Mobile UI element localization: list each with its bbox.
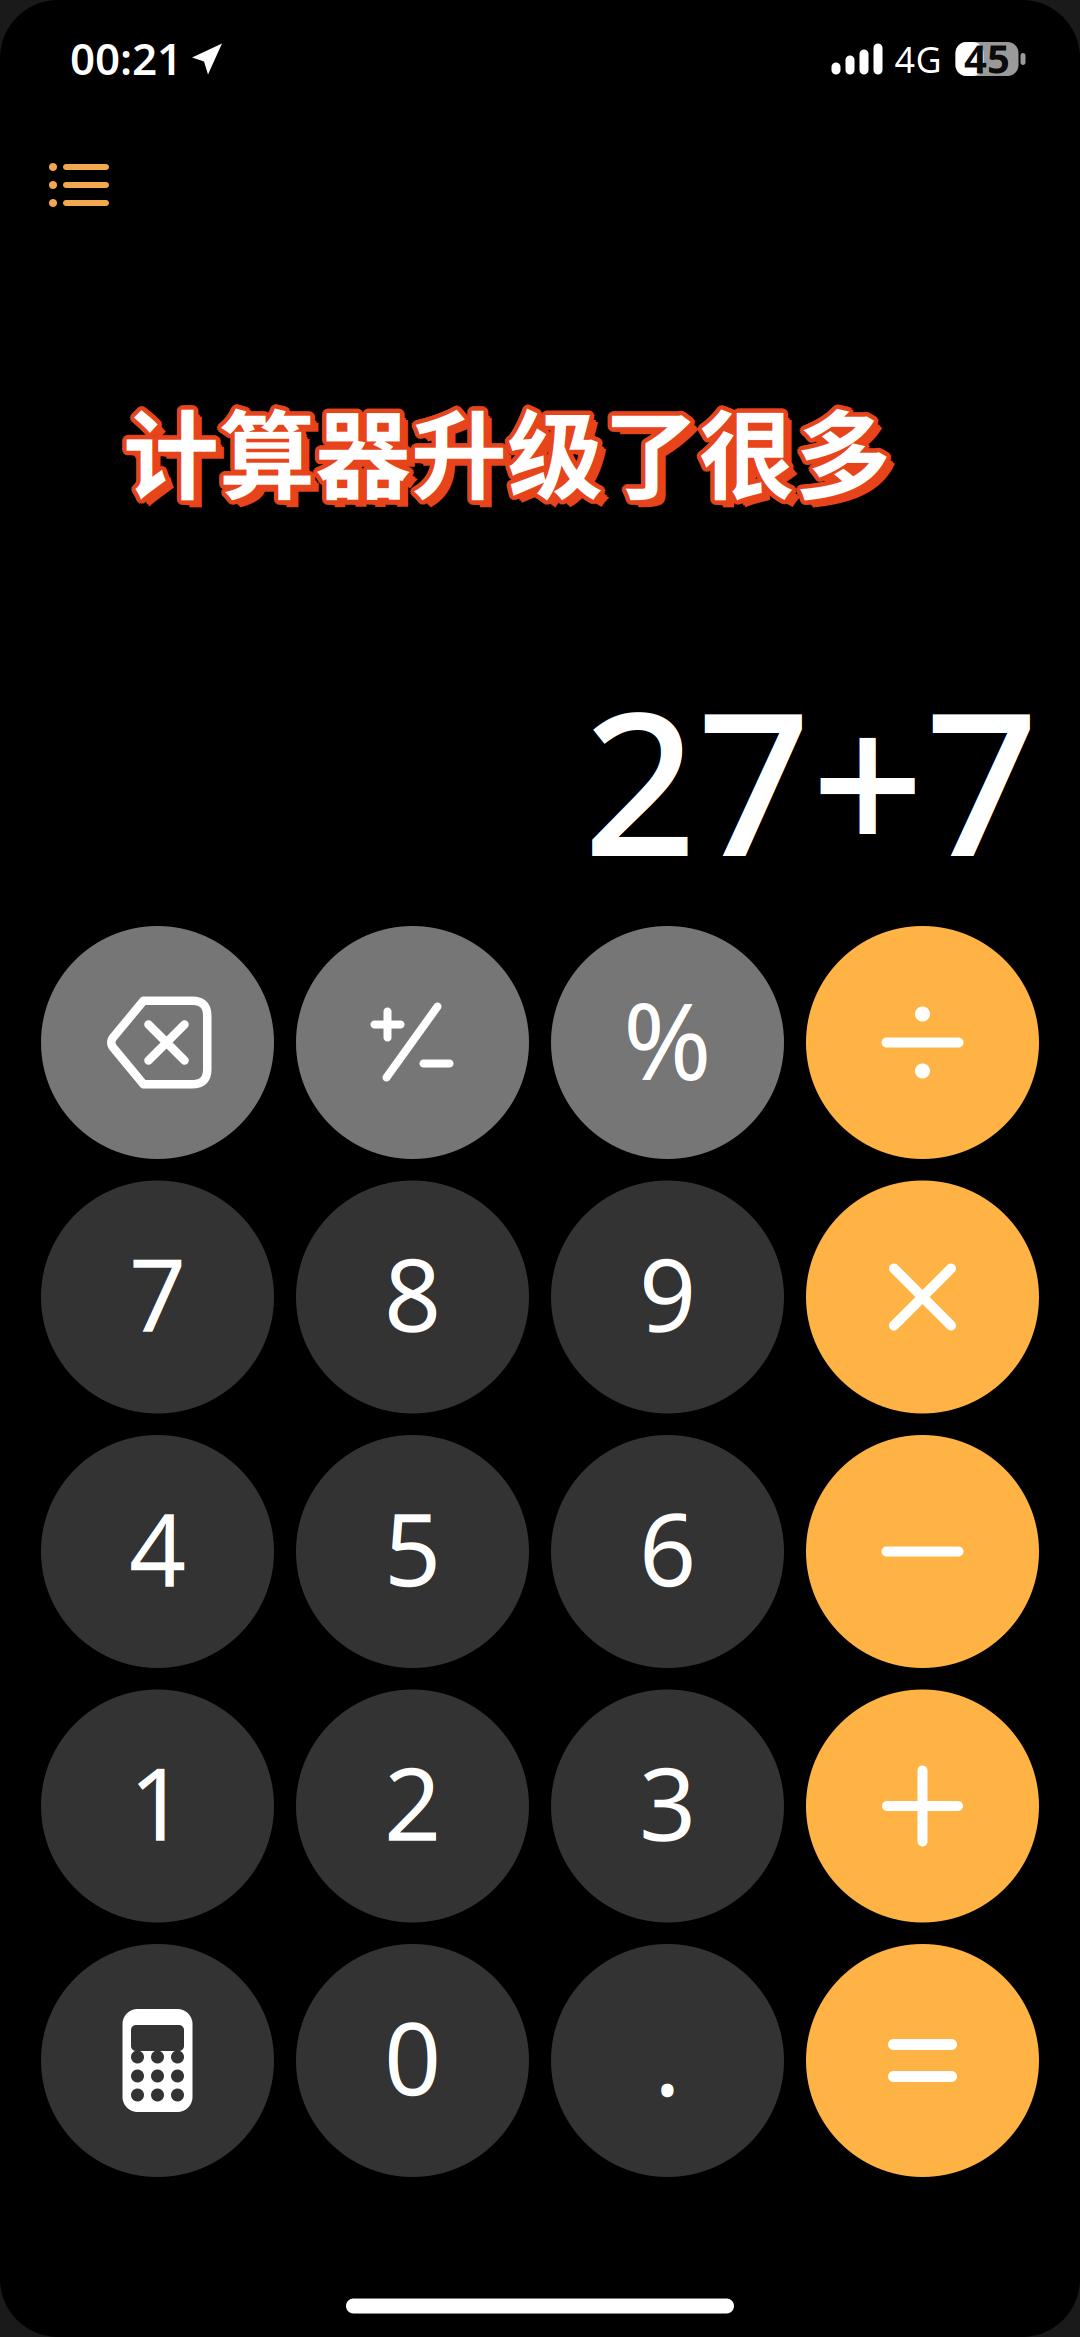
button[interactable]: 9	[551, 1180, 784, 1413]
staticText: .	[654, 1991, 681, 2124]
button[interactable]: %	[551, 926, 784, 1159]
staticText: 计算器升级了很多	[120, 383, 888, 522]
staticText: 计算器升级了很多	[121, 384, 889, 523]
staticText: 1	[129, 1736, 186, 1868]
staticText: %	[623, 968, 712, 1109]
button[interactable]: 1	[41, 1689, 274, 1922]
button[interactable]: 5	[296, 1435, 529, 1668]
button[interactable]: .	[551, 1944, 784, 2177]
staticText: 3	[639, 1736, 696, 1868]
staticText: 计算器升级了很多	[120, 376, 888, 515]
button[interactable]: 7	[41, 1180, 274, 1413]
button[interactable]	[41, 1944, 274, 2177]
staticText: 6	[639, 1481, 696, 1614]
staticText: 计算器升级了很多	[127, 381, 895, 520]
button[interactable]	[806, 1435, 1039, 1668]
staticText: 计算器升级了很多	[129, 384, 897, 523]
button[interactable]: 3	[551, 1689, 784, 1922]
staticText: 2	[384, 1736, 441, 1868]
staticText: 计算器升级了很多	[123, 375, 891, 514]
button[interactable]: 4	[41, 1435, 274, 1668]
button[interactable]: 0	[296, 1944, 529, 2177]
staticText: 计算器升级了很多	[131, 386, 899, 525]
button[interactable]: History	[13, 125, 145, 245]
staticText: 计算器升级了很多	[126, 376, 894, 515]
staticText: 7	[129, 1227, 186, 1359]
staticText: 计算器升级了很多	[127, 378, 895, 517]
staticText: 5	[384, 1481, 441, 1614]
staticText: 计算器升级了很多	[118, 379, 886, 518]
staticText: 计算器升级了很多	[127, 379, 895, 518]
staticText: 计算器升级了很多	[123, 384, 891, 523]
staticText: 00:21	[70, 29, 182, 87]
button[interactable]	[296, 926, 529, 1159]
button[interactable]	[41, 926, 274, 1159]
staticText: 计算器升级了很多	[126, 383, 894, 522]
button[interactable]	[806, 926, 1039, 1159]
staticText: 计算器升级了很多	[121, 375, 889, 514]
staticText: 计算器升级了很多	[119, 378, 887, 517]
staticText: 27+7	[583, 647, 1039, 911]
staticText: 4	[129, 1481, 186, 1614]
button[interactable]: 6	[551, 1435, 784, 1668]
staticText: 45	[964, 31, 1010, 84]
staticText: 4G	[894, 35, 941, 83]
button[interactable]	[806, 1689, 1039, 1922]
button[interactable]: 8	[296, 1180, 529, 1413]
staticText: 计算器升级了很多	[119, 381, 887, 520]
staticText: 计算器升级了很多	[125, 384, 893, 523]
button[interactable]: 2	[296, 1689, 529, 1922]
staticText: 计算器升级了很多	[123, 379, 891, 518]
button[interactable]	[806, 1180, 1039, 1413]
staticText: 计算器升级了很多	[125, 375, 893, 514]
button[interactable]	[806, 1944, 1039, 2177]
staticText: 8	[384, 1227, 441, 1359]
staticText: 0	[384, 1990, 441, 2123]
staticText: 9	[639, 1227, 696, 1359]
